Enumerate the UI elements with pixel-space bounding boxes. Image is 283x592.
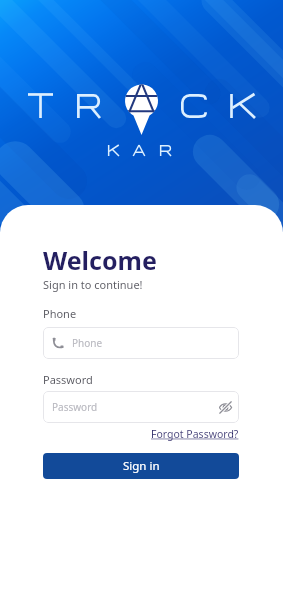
staticText: Password [43, 372, 93, 387]
button[interactable]: Password [43, 391, 239, 423]
other: TrackKar logo [125, 84, 158, 137]
staticText: Welcome [43, 243, 157, 277]
staticText: Sign in to continue! [43, 277, 143, 292]
staticText: Password [52, 400, 98, 414]
button[interactable]: Phone [43, 327, 239, 359]
button[interactable]: Sign in [43, 453, 239, 479]
staticText: Phone [43, 306, 77, 321]
button[interactable]: Forgot Password? [151, 427, 239, 441]
button[interactable]: Toggle password visibility [217, 399, 233, 415]
staticText: Sign in [123, 458, 160, 474]
staticText: Phone [72, 336, 103, 350]
